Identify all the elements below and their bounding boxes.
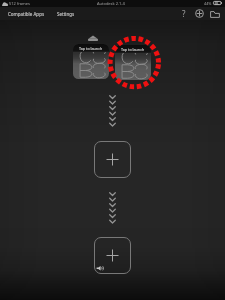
button[interactable]: Help xyxy=(177,7,191,20)
button[interactable]: Tap to launch xyxy=(115,45,151,80)
staticText: 44% xyxy=(204,1,212,6)
staticText: 512 frames xyxy=(9,1,31,6)
staticText: Autodesk 2.1.4 xyxy=(97,1,125,6)
staticText: Compatible Apps xyxy=(8,11,45,17)
button[interactable]: Tap to launch xyxy=(73,44,109,79)
button[interactable]: Add xyxy=(191,7,207,20)
staticText: Tap to launch xyxy=(121,47,145,52)
staticText: Tap to launch xyxy=(79,46,103,51)
button[interactable]: Settings xyxy=(53,7,79,20)
button[interactable]: Add module xyxy=(94,141,131,178)
button[interactable]: Open folder xyxy=(207,7,223,20)
button[interactable]: Compatible Apps xyxy=(4,7,49,20)
button[interactable]: Add module xyxy=(94,237,131,274)
staticText: Settings xyxy=(57,11,75,17)
staticText: ? xyxy=(182,8,186,19)
